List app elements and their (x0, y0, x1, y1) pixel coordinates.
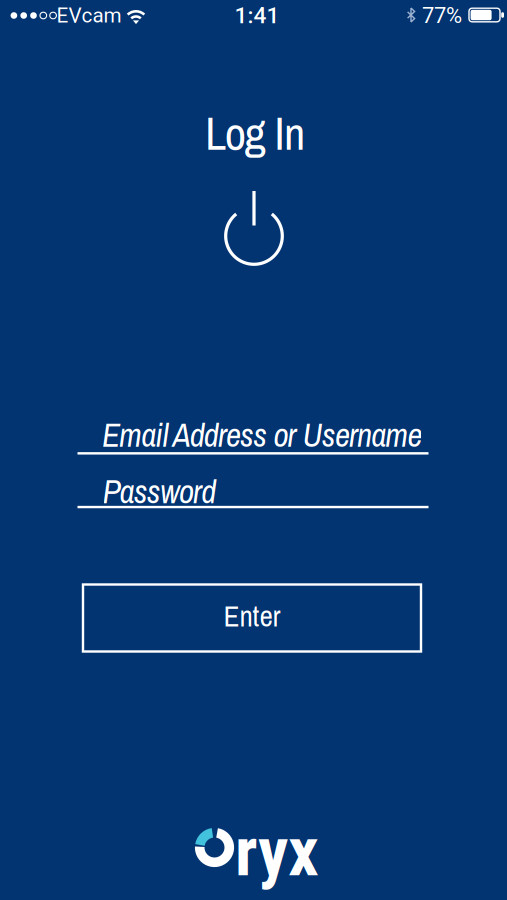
staticText: Enter (223, 596, 280, 636)
staticText: Password (102, 469, 216, 514)
staticText: 1:41 (234, 2, 279, 29)
staticText: EVcam (56, 3, 121, 28)
button[interactable]: Email Address or Username (77, 416, 428, 458)
staticText: ryx (235, 812, 319, 892)
staticText: Email Address or Username (102, 412, 422, 457)
staticText: 77% (422, 3, 462, 28)
button[interactable]: Password (77, 469, 428, 511)
staticText: Log In (205, 102, 305, 164)
button[interactable]: Enter (83, 584, 421, 651)
